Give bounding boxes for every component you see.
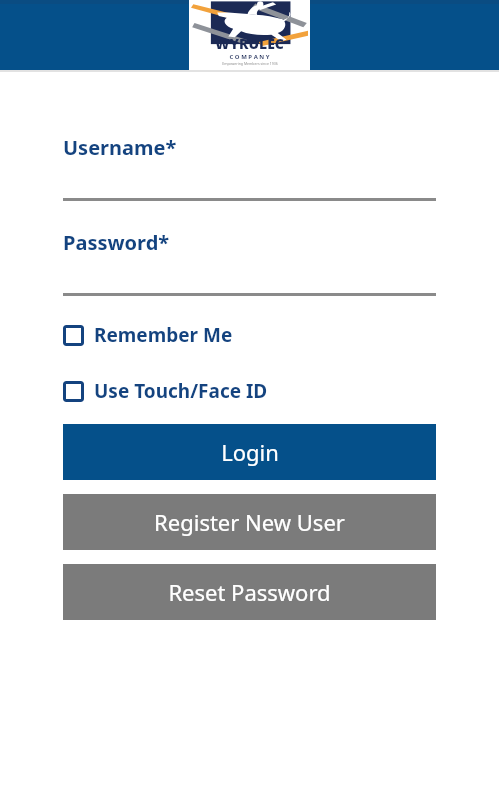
staticText: Use Touch/Face ID	[94, 378, 268, 404]
staticText: Empowering Members since 1936	[222, 61, 278, 66]
other: Wyrulec Company logo	[191, 0, 308, 70]
staticText: WYRULEC	[215, 34, 284, 53]
staticText: Password*	[63, 229, 170, 256]
staticText: Remember Me	[94, 322, 233, 348]
button[interactable]: Remember Me	[63, 320, 436, 350]
button[interactable]: Login	[63, 424, 436, 480]
staticText: Login	[221, 437, 279, 467]
button[interactable]: Register New User	[63, 494, 436, 550]
button[interactable]: Use Touch/Face ID	[63, 376, 436, 406]
staticText: Username*	[63, 134, 177, 161]
staticText: Reset Password	[168, 577, 331, 607]
button[interactable]: Reset Password	[63, 564, 436, 620]
staticText: Register New User	[154, 507, 345, 537]
staticText: C O M P A N Y	[229, 53, 270, 61]
